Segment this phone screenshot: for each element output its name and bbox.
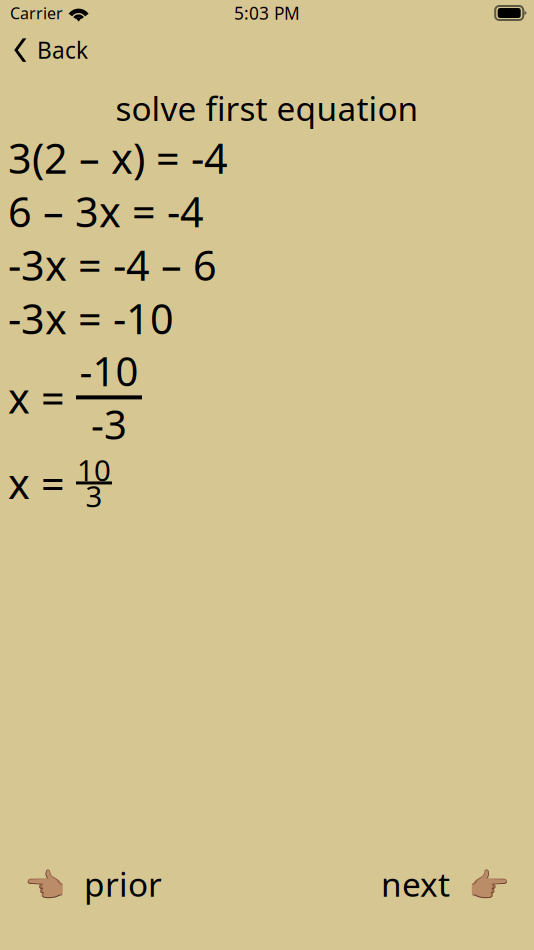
button[interactable]: 👈🏽 prior: [0, 852, 186, 916]
staticText: x =: [8, 370, 65, 425]
staticText: -3x = -4 – 6: [8, 237, 217, 292]
staticText: 3(2 – x) = -4: [8, 130, 228, 185]
staticText: next 👉🏽: [381, 862, 510, 906]
staticText: -10: [79, 344, 138, 397]
staticText: -3x = -10: [8, 291, 174, 346]
staticText: 5:03 PM: [234, 1, 300, 24]
staticText: 6 – 3x = -4: [8, 184, 204, 239]
button[interactable]: next 👉🏽: [357, 852, 534, 916]
staticText: solve first equation: [115, 86, 418, 130]
staticText: 10: [77, 450, 111, 489]
staticText: Carrier: [10, 2, 63, 24]
staticText: -3: [91, 397, 127, 450]
staticText: x =: [8, 455, 65, 510]
staticText: 3: [85, 476, 102, 515]
staticText: 👈🏽 prior: [24, 862, 162, 906]
staticText: Back: [37, 35, 88, 65]
button[interactable]: Back: [0, 29, 100, 71]
